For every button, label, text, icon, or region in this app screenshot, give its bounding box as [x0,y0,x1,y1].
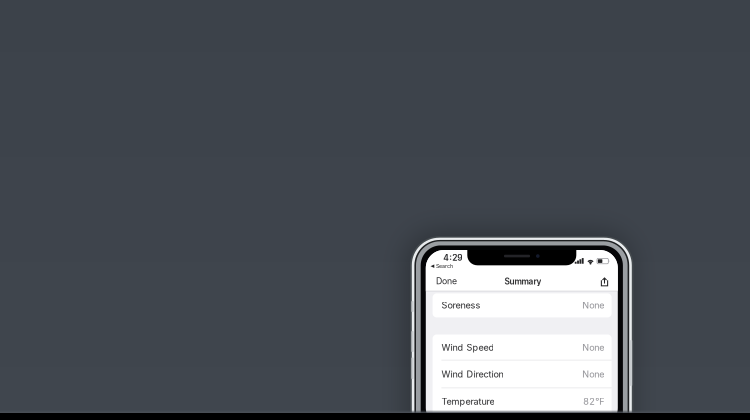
button[interactable]: Wind Direction [441,368,604,381]
staticText: Summary [504,276,541,286]
staticText: None [582,342,604,353]
staticText: Done [436,276,457,286]
staticText: 82°F [583,396,604,407]
staticText: Temperature [441,396,494,407]
staticText: None [582,369,604,380]
button[interactable]: Temperature [441,395,604,408]
staticText: 4:29 [443,252,462,263]
staticText: Search [436,263,453,269]
button[interactable]: Soreness [441,299,604,312]
button[interactable]: Done [431,271,462,291]
staticText: Soreness [441,300,480,311]
staticText: Wind Direction [441,369,503,380]
button[interactable]: Wind Speed [441,341,604,354]
button[interactable]: Share [597,273,612,290]
staticText: None [582,300,604,311]
staticText: Wind Speed [441,342,494,353]
